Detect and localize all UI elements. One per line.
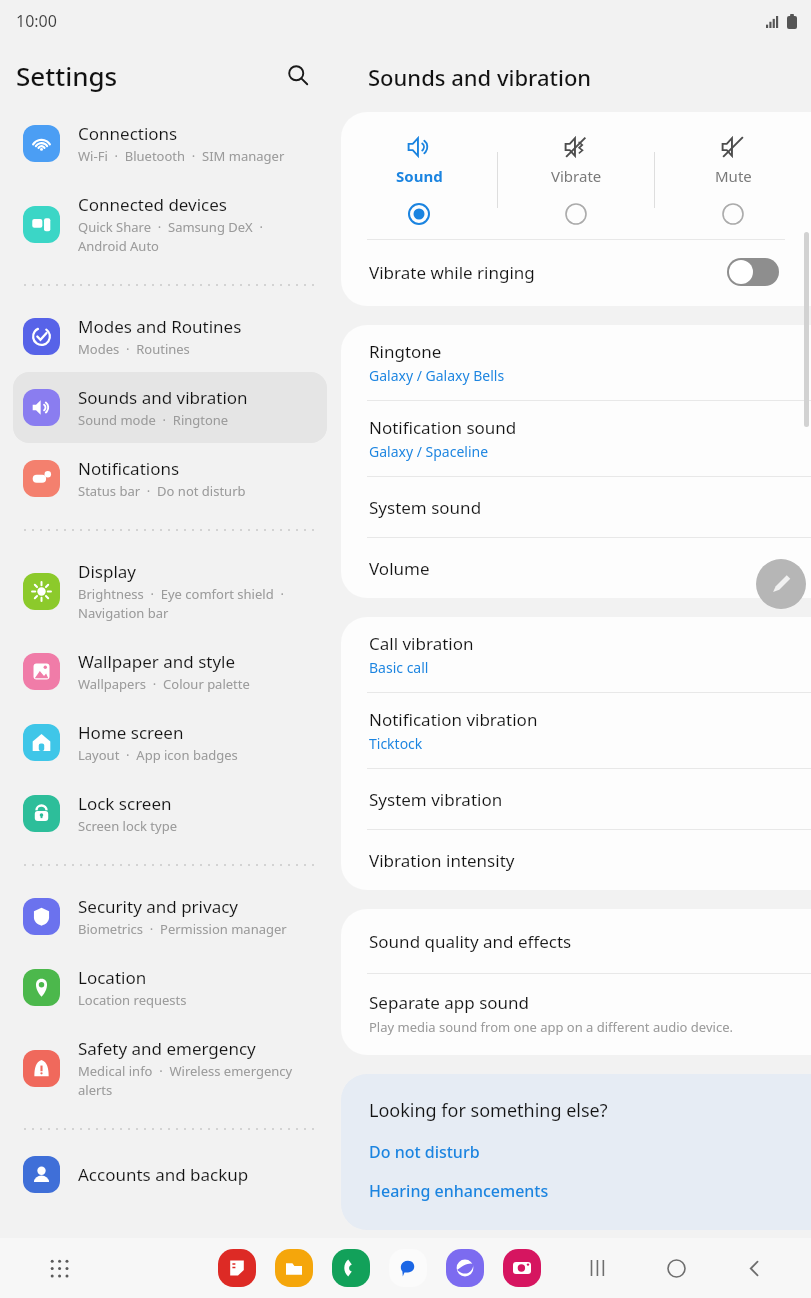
staticText: Security and privacy [78, 895, 239, 918]
button[interactable]: camera [503, 1249, 541, 1287]
button[interactable]: Vibrate [498, 134, 654, 225]
staticText: Sound [396, 166, 443, 186]
staticText: Ticktock [369, 734, 423, 753]
staticText: Sounds and vibration [368, 62, 592, 92]
staticText: Status bar · Do not disturb [78, 482, 246, 500]
staticText: Notification sound [369, 416, 517, 439]
button[interactable]: Volume [341, 538, 811, 598]
button[interactable]: msg [389, 1249, 427, 1287]
staticText: System sound [369, 496, 482, 519]
staticText: Sound quality and effects [369, 930, 572, 953]
staticText: Brightness · Eye comfort shield · Naviga… [78, 585, 284, 622]
staticText: 10:00 [16, 10, 57, 32]
button[interactable]: Hearing enhancements [369, 1178, 549, 1204]
button[interactable]: phone [332, 1249, 370, 1287]
button[interactable]: Search [278, 55, 318, 95]
staticText: Mute [715, 166, 752, 186]
staticText: Modes · Routines [78, 340, 190, 358]
button[interactable]: Recents [581, 1251, 615, 1285]
staticText: Basic call [369, 658, 429, 677]
button[interactable]: Sound quality and effects [341, 909, 811, 973]
button[interactable]: Connections [13, 108, 327, 179]
staticText: Call vibration [369, 632, 474, 655]
button[interactable]: System sound [341, 477, 811, 537]
staticText: System vibration [369, 788, 503, 811]
button[interactable]: Sounds and vibration [13, 372, 327, 443]
staticText: Notifications [78, 457, 180, 480]
button[interactable]: Do not disturb [369, 1139, 480, 1165]
button[interactable]: Vibration intensity [341, 830, 811, 890]
staticText: Medical info · Wireless emergency alerts [78, 1062, 293, 1099]
staticText: Location [78, 966, 147, 989]
button[interactable]: Location [13, 952, 327, 1023]
button[interactable]: notes [218, 1249, 256, 1287]
button[interactable]: System vibration [341, 769, 811, 829]
staticText: Vibrate while ringing [369, 261, 535, 284]
staticText: Sounds and vibration [78, 386, 248, 409]
button[interactable]: Home [659, 1251, 693, 1285]
button[interactable]: Notification sound [341, 401, 811, 476]
staticText: Sound mode · Ringtone [78, 411, 229, 429]
button[interactable]: Connected devices [13, 179, 327, 269]
button[interactable]: Display [13, 546, 327, 636]
button[interactable]: Separate app sound [341, 974, 811, 1055]
staticText: Wallpaper and style [78, 650, 236, 673]
staticText: Play media sound from one app on a diffe… [369, 1018, 733, 1036]
staticText: Connections [78, 122, 178, 145]
staticText: Lock screen [78, 792, 172, 815]
staticText: Ringtone [369, 340, 442, 363]
button[interactable]: Accounts and backup [13, 1145, 327, 1203]
button[interactable]: Vibrate while ringing [341, 240, 811, 304]
button[interactable]: Home screen [13, 707, 327, 778]
button[interactable]: Edit [756, 559, 806, 609]
button[interactable]: Apps [42, 1251, 76, 1285]
staticText: Modes and Routines [78, 315, 242, 338]
button[interactable]: Wallpaper and style [13, 636, 327, 707]
button[interactable]: Notifications [13, 443, 327, 514]
staticText: Safety and emergency [78, 1037, 256, 1060]
staticText: Vibrate [551, 166, 602, 186]
button[interactable]: Call vibration [341, 617, 811, 692]
staticText: Notification vibration [369, 708, 538, 731]
button[interactable]: Lock screen [13, 778, 327, 849]
button[interactable]: Back [737, 1251, 771, 1285]
button[interactable]: folder [275, 1249, 313, 1287]
staticText: Wallpapers · Colour palette [78, 675, 250, 693]
staticText: Accounts and backup [78, 1163, 249, 1186]
staticText: Home screen [78, 721, 184, 744]
staticText: Galaxy / Spaceline [369, 442, 489, 461]
button[interactable]: Security and privacy [13, 881, 327, 952]
button[interactable]: Notification vibration [341, 693, 811, 768]
button[interactable]: Ringtone [341, 325, 811, 400]
staticText: Quick Share · Samsung DeX · Android Auto [78, 218, 263, 255]
staticText: Volume [369, 557, 430, 580]
staticText: Looking for something else? [369, 1098, 608, 1123]
button[interactable]: Safety and emergency [13, 1023, 327, 1113]
button[interactable]: Modes and Routines [13, 301, 327, 372]
staticText: Galaxy / Galaxy Bells [369, 366, 505, 385]
button[interactable]: Mute [655, 134, 811, 225]
staticText: Biometrics · Permission manager [78, 920, 287, 938]
button[interactable]: internet [446, 1249, 484, 1287]
staticText: Connected devices [78, 193, 228, 216]
staticText: Wi-Fi · Bluetooth · SIM manager [78, 147, 285, 165]
staticText: Layout · App icon badges [78, 746, 238, 764]
staticText: Settings [16, 58, 118, 93]
staticText: Location requests [78, 991, 187, 1009]
staticText: Vibration intensity [369, 849, 515, 872]
staticText: Separate app sound [369, 991, 530, 1014]
staticText: Display [78, 560, 136, 583]
staticText: Screen lock type [78, 817, 177, 835]
button[interactable]: Sound [341, 134, 497, 225]
